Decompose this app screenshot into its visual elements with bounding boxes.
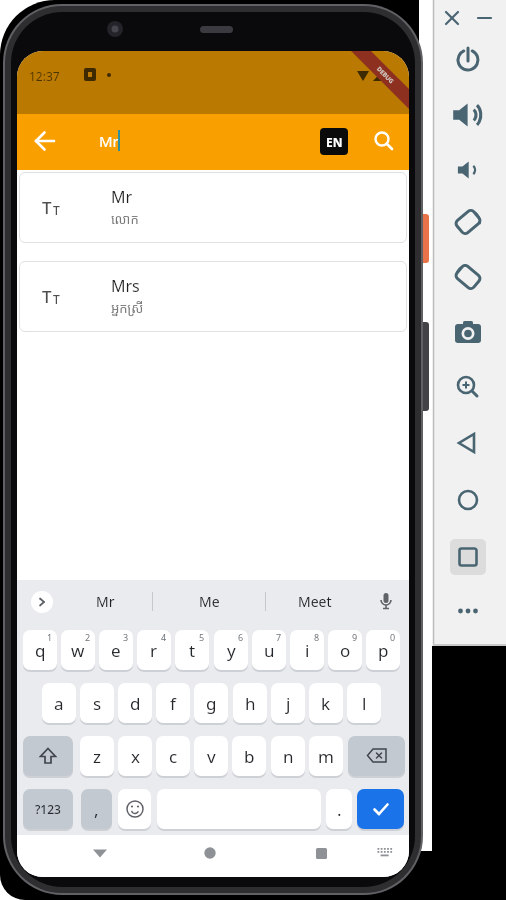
button[interactable] [366, 630, 400, 670]
staticText: 1 [47, 631, 53, 643]
button[interactable] [23, 736, 73, 776]
staticText: j [286, 692, 291, 715]
staticText: v [207, 745, 216, 768]
staticText: c [169, 745, 178, 768]
button[interactable] [450, 593, 486, 629]
button[interactable] [366, 123, 402, 159]
button[interactable] [85, 838, 115, 868]
staticText: k [321, 692, 331, 715]
staticText: Mr [99, 131, 119, 151]
staticText: u [264, 639, 275, 662]
staticText: T [53, 291, 60, 307]
button[interactable]: j [271, 683, 305, 723]
button[interactable]: a [42, 683, 76, 723]
button[interactable]: . [326, 789, 352, 829]
button[interactable]: T [19, 261, 407, 332]
staticText: 2 [85, 631, 91, 643]
button[interactable] [450, 152, 486, 188]
button[interactable] [99, 630, 133, 670]
staticText: T [53, 202, 60, 218]
staticText: 7 [276, 631, 282, 643]
button[interactable]: Meet [285, 584, 345, 619]
button[interactable]: s [80, 683, 114, 723]
staticText: 12:37 [29, 68, 60, 84]
staticText: s [93, 692, 102, 715]
button[interactable] [195, 838, 225, 868]
button[interactable] [27, 123, 63, 159]
button[interactable]: EN [320, 128, 348, 155]
staticText: z [93, 745, 101, 768]
staticText: Mrs [111, 275, 140, 297]
button[interactable] [214, 630, 248, 670]
button[interactable] [450, 42, 486, 78]
button[interactable]: v [194, 736, 228, 776]
button[interactable] [439, 5, 465, 31]
staticText: DEBUG [375, 65, 396, 86]
staticText: EN [326, 134, 343, 150]
staticText: 8 [314, 631, 320, 643]
button[interactable]: c [156, 736, 190, 776]
staticText: 3 [123, 631, 129, 643]
button[interactable] [252, 630, 286, 670]
button[interactable] [450, 482, 486, 518]
button[interactable] [471, 5, 497, 31]
button[interactable] [357, 789, 404, 829]
button[interactable] [450, 259, 486, 295]
button[interactable]: Mr [75, 584, 135, 619]
staticText: p [378, 639, 389, 662]
staticText: q [35, 639, 46, 662]
button[interactable]: T [19, 172, 407, 243]
button[interactable] [61, 630, 95, 670]
button[interactable] [118, 789, 151, 829]
button[interactable]: ?123 [23, 789, 73, 829]
button[interactable]: l [347, 683, 381, 723]
staticText: , [94, 798, 99, 821]
staticText: អ្នកស្រី [111, 299, 144, 317]
button[interactable] [99, 122, 297, 168]
button[interactable]: g [194, 683, 228, 723]
button[interactable] [328, 630, 362, 670]
staticText: f [170, 692, 176, 715]
button[interactable] [137, 630, 171, 670]
button[interactable]: n [271, 736, 305, 776]
staticText: r [150, 639, 158, 662]
staticText: 0 [390, 631, 396, 643]
staticText: y [227, 639, 236, 662]
staticText: Me [199, 592, 220, 611]
button[interactable]: x [118, 736, 152, 776]
button[interactable] [450, 425, 486, 461]
button[interactable] [375, 590, 397, 612]
button[interactable] [450, 370, 486, 406]
staticText: a [54, 692, 64, 715]
staticText: 4 [161, 631, 167, 643]
button[interactable] [175, 630, 209, 670]
button[interactable]: h [233, 683, 267, 723]
button[interactable] [306, 838, 336, 868]
staticText: i [305, 639, 310, 662]
button[interactable] [372, 840, 398, 866]
staticText: 9 [352, 631, 358, 643]
button[interactable]: k [309, 683, 343, 723]
button[interactable] [450, 539, 486, 575]
button[interactable]: Me [179, 584, 239, 619]
button[interactable] [450, 204, 486, 240]
button[interactable]: b [232, 736, 266, 776]
button[interactable] [290, 630, 324, 670]
button[interactable]: , [81, 789, 112, 829]
staticText: n [283, 745, 294, 768]
button[interactable] [450, 315, 486, 351]
button[interactable]: m [309, 736, 343, 776]
staticText: 5 [199, 631, 205, 643]
button[interactable] [450, 97, 486, 133]
button[interactable] [23, 630, 57, 670]
button[interactable]: d [118, 683, 152, 723]
button[interactable] [31, 591, 53, 613]
staticText: m [318, 745, 334, 768]
staticText: w [71, 639, 85, 662]
staticText: លោក [111, 210, 139, 228]
button[interactable] [348, 736, 405, 776]
button[interactable]: z [80, 736, 114, 776]
staticText: g [206, 692, 217, 715]
button[interactable]: f [156, 683, 190, 723]
